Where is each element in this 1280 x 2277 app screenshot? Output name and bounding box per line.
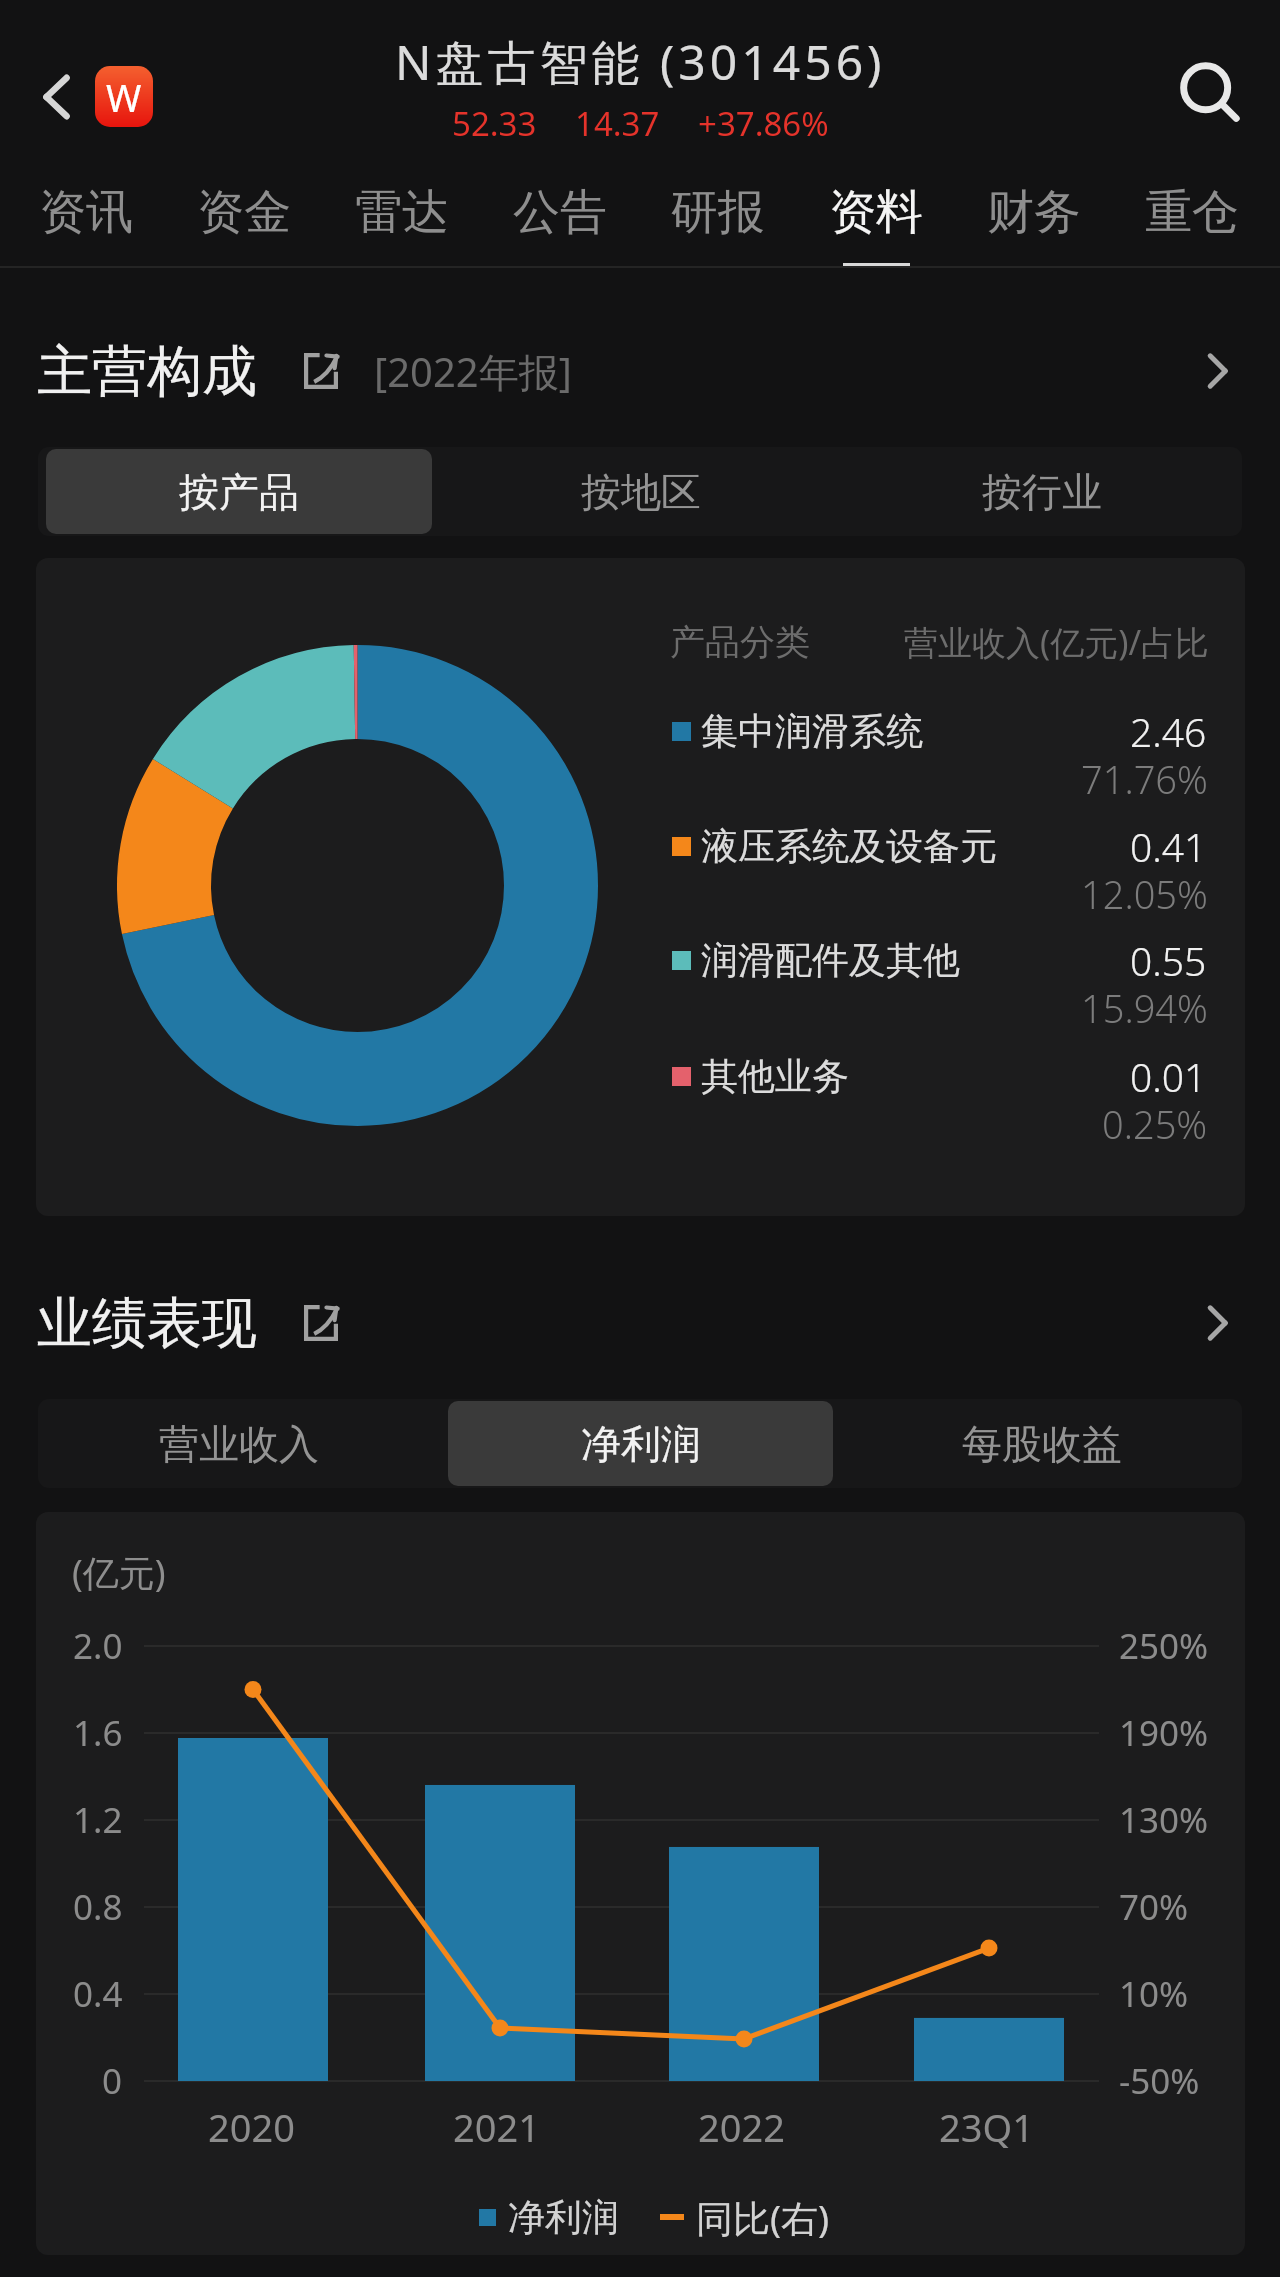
- staticText: 0: [102, 2057, 123, 2105]
- button[interactable]: 资金: [165, 160, 323, 268]
- staticText: +37.86%: [698, 101, 829, 146]
- button[interactable]: 主营构成: [0, 326, 1280, 416]
- staticText: 公告: [513, 183, 607, 242]
- staticText: 雷达: [355, 183, 449, 242]
- staticText: 其他业务: [701, 1053, 849, 1100]
- staticText: 资料: [829, 183, 923, 242]
- staticText: 按行业: [982, 467, 1102, 517]
- button[interactable]: 资料: [797, 160, 955, 268]
- button[interactable]: 资讯: [7, 160, 165, 268]
- staticText: 10%: [1119, 1970, 1189, 2018]
- button[interactable]: 营业收入: [46, 1401, 432, 1486]
- staticText: 营业收入(亿元)/占比: [904, 619, 1210, 665]
- staticText: 净利润: [581, 1419, 701, 1469]
- staticText: 2.46: [1130, 705, 1207, 758]
- staticText: 研报: [671, 183, 765, 242]
- button[interactable]: Search: [1170, 54, 1250, 134]
- button[interactable]: 重仓: [1113, 160, 1271, 268]
- staticText: 15.94%: [1081, 982, 1208, 1034]
- staticText: 12.05%: [1081, 868, 1208, 920]
- staticText: 按产品: [179, 467, 299, 517]
- staticText: 产品分类: [670, 620, 810, 664]
- staticText: 70%: [1119, 1883, 1189, 1931]
- staticText: 财务: [987, 183, 1081, 242]
- staticText: 0.55: [1130, 934, 1207, 987]
- staticText: 190%: [1119, 1709, 1209, 1757]
- staticText: 0.01: [1130, 1050, 1207, 1103]
- staticText: 2.0: [73, 1622, 123, 1670]
- staticText: 0.8: [73, 1883, 123, 1931]
- button[interactable]: 净利润: [448, 1401, 833, 1486]
- staticText: 14.37: [575, 101, 660, 146]
- button[interactable]: 按行业: [849, 449, 1234, 534]
- staticText: 每股收益: [962, 1419, 1122, 1469]
- button[interactable]: 研报: [639, 160, 797, 268]
- staticText: 主营构成: [37, 337, 257, 406]
- button[interactable]: 财务: [955, 160, 1113, 268]
- button[interactable]: 按产品: [46, 449, 432, 534]
- staticText: 润滑配件及其他: [701, 937, 960, 984]
- button[interactable]: 雷达: [323, 160, 481, 268]
- staticText: 2020: [208, 2101, 295, 2153]
- staticText: 液压系统及设备元: [701, 823, 997, 870]
- button[interactable]: 业绩表现: [0, 1278, 1280, 1368]
- staticText: 集中润滑系统: [701, 708, 923, 755]
- button[interactable]: 每股收益: [849, 1401, 1234, 1486]
- staticText: 0.25%: [1102, 1098, 1208, 1150]
- staticText: (亿元): [72, 1548, 166, 1597]
- staticText: [2022年报]: [374, 344, 572, 399]
- staticText: 资讯: [39, 183, 133, 242]
- button[interactable]: Wind home: [95, 66, 153, 127]
- staticText: 同比(右): [696, 2192, 830, 2243]
- staticText: 按地区: [581, 467, 701, 517]
- staticText: 业绩表现: [37, 1289, 257, 1358]
- staticText: W: [106, 71, 142, 123]
- staticText: 重仓: [1145, 183, 1239, 242]
- button[interactable]: 按地区: [448, 449, 833, 534]
- button[interactable]: 公告: [481, 160, 639, 268]
- staticText: 2021: [453, 2101, 540, 2153]
- staticText: 0.4: [73, 1970, 123, 2018]
- staticText: 2022: [698, 2101, 785, 2153]
- button[interactable]: Back: [21, 61, 93, 133]
- staticText: 1.2: [73, 1796, 123, 1844]
- staticText: 52.33: [452, 101, 537, 146]
- staticText: 1.6: [73, 1709, 123, 1757]
- staticText: -50%: [1119, 2057, 1200, 2105]
- staticText: 250%: [1119, 1622, 1209, 1670]
- staticText: 净利润: [508, 2194, 619, 2241]
- staticText: 资金: [197, 183, 291, 242]
- staticText: 营业收入: [159, 1419, 319, 1469]
- button[interactable]: Share: [304, 1305, 338, 1341]
- staticText: 0.41: [1130, 820, 1207, 873]
- staticText: 71.76%: [1081, 753, 1208, 805]
- staticText: N盘古智能 (301456): [395, 29, 886, 95]
- staticText: 23Q1: [939, 2101, 1034, 2153]
- button[interactable]: Share: [304, 353, 338, 389]
- staticText: 130%: [1119, 1796, 1209, 1844]
